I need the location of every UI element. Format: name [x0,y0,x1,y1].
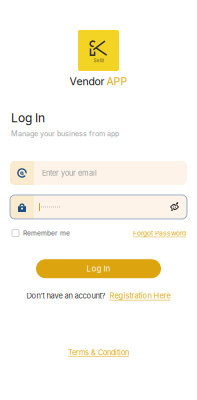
staticText: Forgot Password [133,229,186,237]
staticText: Remember me [23,229,70,237]
staticText: Log In [86,264,110,274]
button[interactable]: Show password [170,198,187,216]
staticText: Sellit [93,58,103,63]
button[interactable]: Terms & Condition [68,348,129,357]
staticText: Terms & Condition [68,348,129,357]
staticText: Log In [11,111,45,125]
staticText: Manage your business from app [11,129,119,138]
staticText: APP [106,75,127,88]
staticText: Enter your email [42,168,97,177]
button[interactable]: Remember me [12,229,70,237]
button[interactable]: Log In [36,259,161,278]
staticText: Registration Here [109,291,170,300]
staticText: Vendor [69,75,104,88]
button[interactable]: Registration Here [109,291,170,300]
staticText: Don't have an account? [26,291,105,300]
button[interactable]: Forgot Password [133,229,186,237]
